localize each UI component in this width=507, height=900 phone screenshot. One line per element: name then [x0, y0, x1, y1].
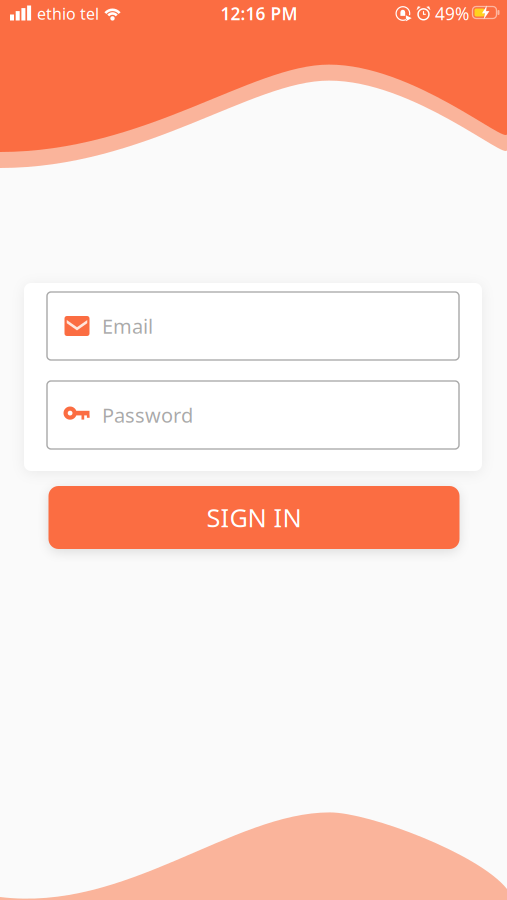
staticText: Password [102, 402, 193, 428]
staticText: 12:16 PM [220, 2, 297, 25]
staticText: SIGN IN [206, 501, 301, 534]
staticText: ethio tel [37, 3, 99, 24]
button[interactable]: Password [47, 381, 459, 449]
button[interactable]: Email [47, 292, 459, 360]
staticText: Email [102, 313, 153, 339]
staticText: 49% [435, 2, 469, 25]
button[interactable]: SIGN IN [48, 486, 459, 549]
